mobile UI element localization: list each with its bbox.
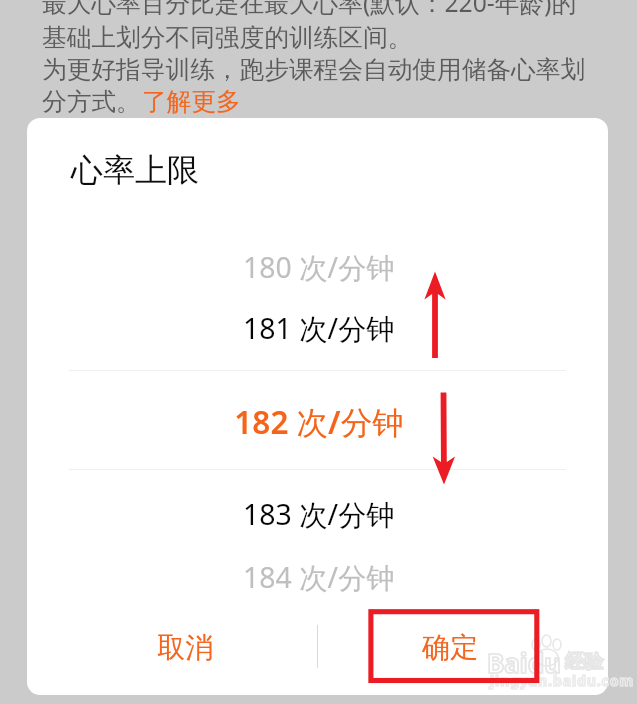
staticText: 分方式。 (42, 86, 141, 117)
staticText: 经验 (565, 650, 603, 674)
staticText: 取消 (157, 630, 214, 666)
staticText: 184 次/分钟 (243, 558, 395, 597)
staticText: 为更好指导训练，跑步课程会自动使用储备心率划 (42, 54, 586, 85)
staticText: jingyan.baidu.com (490, 671, 634, 690)
button[interactable]: 181 次/分钟 (28, 298, 608, 358)
button[interactable]: 182 次/分钟 (28, 372, 608, 471)
staticText: 180 次/分钟 (243, 248, 395, 287)
staticText: 181 次/分钟 (243, 309, 395, 348)
staticText: 183 次/分钟 (243, 495, 395, 534)
button[interactable]: 取消 (27, 606, 317, 690)
staticText: 最大心率百分比是在最大心率(默认：220-年龄)的 (42, 0, 577, 20)
staticText: 182 次/分钟 (234, 400, 404, 443)
button[interactable]: 184 次/分钟 (28, 547, 608, 607)
button[interactable]: 180 次/分钟 (28, 237, 608, 297)
staticText: Baidu (487, 645, 561, 680)
button[interactable]: 183 次/分钟 (28, 484, 608, 544)
staticText: 心率上限 (71, 150, 199, 190)
staticText: 基础上划分不同强度的训练区间。 (42, 22, 413, 53)
button[interactable]: 确定 (318, 606, 608, 690)
button[interactable]: 了解更多 (142, 86, 241, 117)
staticText: 确定 (422, 630, 479, 666)
